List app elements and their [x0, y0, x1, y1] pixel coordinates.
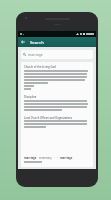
staticText: marriage [60, 156, 73, 160]
staticText: · [57, 156, 58, 160]
button[interactable]: Search [30, 37, 44, 47]
staticText: Church of the Living God [24, 65, 56, 69]
button[interactable]: Search [21, 50, 93, 59]
staticText: Search [30, 39, 44, 45]
staticText: · [54, 156, 55, 160]
button[interactable]: Church of the Living God [21, 62, 93, 167]
staticText: ceremony [39, 156, 52, 160]
staticText: marriage [24, 156, 37, 160]
staticText: Discipline [24, 95, 37, 99]
other: Search [23, 53, 26, 56]
staticText: marriage [28, 52, 43, 57]
button[interactable]: Back [18, 37, 28, 47]
staticText: Local Church Officers and Organizations [24, 116, 73, 119]
